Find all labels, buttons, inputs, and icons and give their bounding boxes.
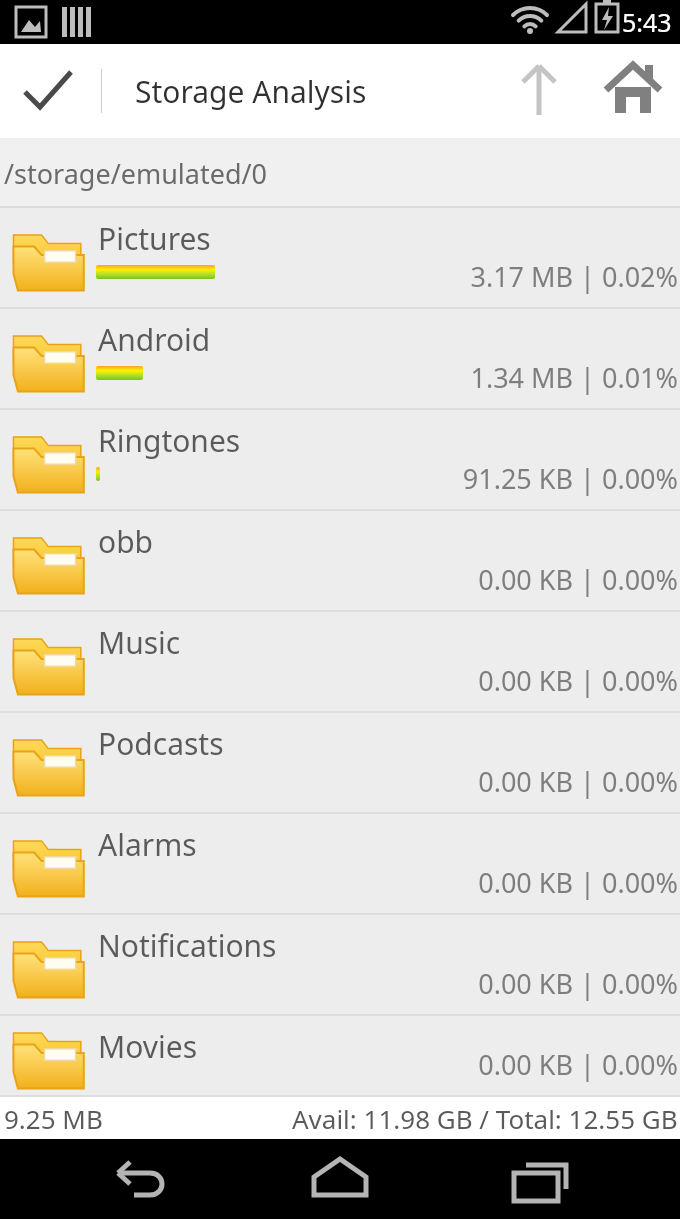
- staticText: 0.00 KB | 0.00%: [478, 662, 678, 699]
- button[interactable]: Notifications: [0, 915, 680, 1016]
- staticText: 3.17 MB | 0.02%: [470, 258, 678, 295]
- staticText: Notifications: [98, 925, 277, 966]
- button[interactable]: Podcasts: [0, 713, 680, 814]
- staticText: 0.00 KB | 0.00%: [478, 1046, 678, 1083]
- button[interactable]: Android: [0, 309, 680, 410]
- staticText: obb: [98, 521, 154, 562]
- staticText: 9.25 MB: [4, 1101, 103, 1136]
- button[interactable]: Up: [492, 44, 586, 138]
- button[interactable]: Back: [80, 1139, 200, 1219]
- button[interactable]: Pictures: [0, 208, 680, 309]
- staticText: 0.00 KB | 0.00%: [478, 864, 678, 901]
- staticText: Podcasts: [98, 723, 224, 764]
- staticText: Pictures: [98, 218, 211, 259]
- staticText: 91.25 KB | 0.00%: [462, 460, 678, 497]
- button[interactable]: Ringtones: [0, 410, 680, 511]
- staticText: Storage Analysis: [135, 71, 367, 112]
- staticText: 5:43: [622, 5, 672, 39]
- staticText: 0.00 KB | 0.00%: [478, 965, 678, 1002]
- button[interactable]: Movies: [0, 1016, 680, 1097]
- staticText: Movies: [98, 1026, 198, 1067]
- staticText: Music: [98, 622, 181, 663]
- button[interactable]: Select: [0, 44, 94, 138]
- staticText: 0.00 KB | 0.00%: [478, 763, 678, 800]
- button[interactable]: Music: [0, 612, 680, 713]
- button[interactable]: Home: [586, 44, 680, 138]
- staticText: 0.00 KB | 0.00%: [478, 561, 678, 598]
- staticText: 1.34 MB | 0.01%: [470, 359, 678, 396]
- button[interactable]: Alarms: [0, 814, 680, 915]
- staticText: Ringtones: [98, 420, 241, 461]
- staticText: /storage/emulated/0: [4, 155, 268, 192]
- staticText: Android: [98, 319, 211, 360]
- staticText: Alarms: [98, 824, 197, 865]
- button[interactable]: Recent apps: [480, 1139, 600, 1219]
- staticText: Avail: 11.98 GB / Total: 12.55 GB: [292, 1101, 678, 1136]
- button[interactable]: Home: [280, 1139, 400, 1219]
- button[interactable]: obb: [0, 511, 680, 612]
